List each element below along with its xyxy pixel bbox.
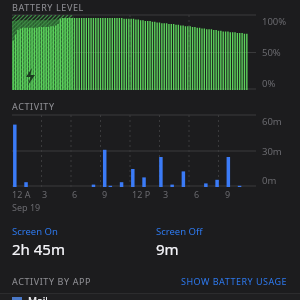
staticText: 3: [163, 188, 169, 200]
staticText: ACTIVITY: [12, 100, 55, 112]
staticText: 6: [194, 188, 200, 200]
staticText: Screen Off: [156, 225, 203, 238]
staticText: Sep 19: [12, 201, 41, 213]
staticText: Mail: [28, 294, 48, 300]
staticText: Screen On: [12, 225, 58, 238]
staticText: 0m: [262, 174, 277, 187]
button[interactable]: Mail: [0, 294, 300, 300]
staticText: 100%: [262, 15, 287, 28]
staticText: 6: [72, 188, 78, 200]
staticText: 9m: [156, 239, 179, 259]
staticText: 9: [102, 188, 108, 200]
staticText: 3: [42, 188, 48, 200]
staticText: BATTERY LEVEL: [12, 1, 84, 13]
staticText: SHOW BATTERY USAGE: [181, 275, 288, 287]
staticText: 2h 45m: [12, 239, 65, 259]
staticText: 50%: [262, 46, 281, 59]
staticText: 12 A: [12, 188, 31, 200]
staticText: 9: [225, 188, 231, 200]
button[interactable]: SHOW BATTERY USAGE: [181, 275, 288, 287]
staticText: 12 P: [132, 188, 151, 200]
staticText: 0%: [262, 77, 276, 90]
staticText: 30m: [262, 145, 282, 158]
staticText: ACTIVITY BY APP: [12, 275, 92, 287]
staticText: 60m: [262, 115, 282, 128]
